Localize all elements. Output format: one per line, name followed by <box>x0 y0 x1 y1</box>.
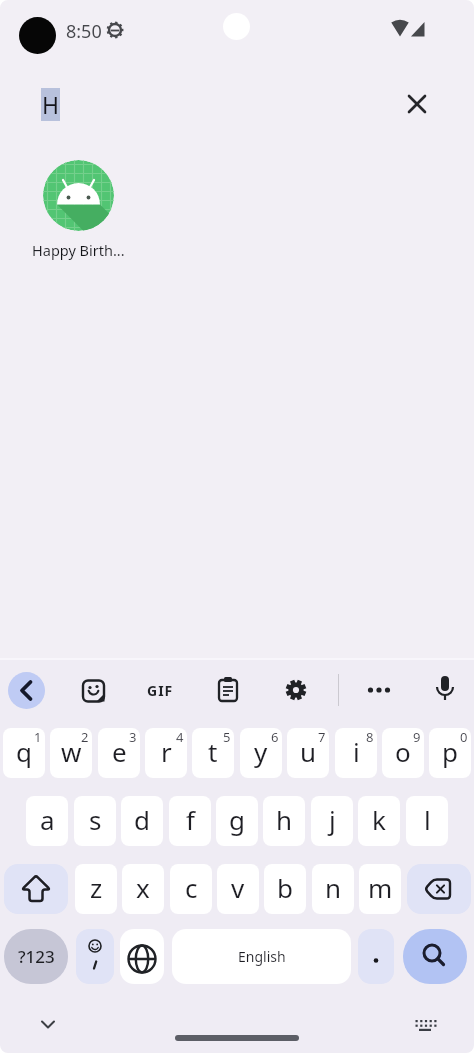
staticText: 8 <box>366 728 374 746</box>
staticText: r <box>161 734 172 769</box>
button[interactable]: c <box>170 864 212 914</box>
button[interactable]: m <box>359 864 401 914</box>
button[interactable] <box>8 672 45 709</box>
staticText: f <box>186 802 195 837</box>
button[interactable]: v <box>217 864 259 914</box>
staticText: n <box>325 870 342 905</box>
button[interactable]: o <box>382 728 424 778</box>
staticText: 8:50 <box>66 19 102 41</box>
button[interactable]: l <box>406 796 448 846</box>
staticText: p <box>442 734 458 769</box>
button[interactable] <box>76 929 114 984</box>
button[interactable] <box>204 666 252 714</box>
staticText: GIF <box>147 681 174 700</box>
button[interactable]: f <box>169 796 211 846</box>
staticText: 6 <box>271 728 279 746</box>
staticText: b <box>277 870 293 905</box>
button[interactable] <box>28 1004 68 1044</box>
button[interactable]: z <box>75 864 117 914</box>
staticText: w <box>61 734 82 769</box>
button[interactable]: GIF <box>136 666 184 714</box>
button[interactable] <box>355 666 403 714</box>
staticText: 2 <box>81 728 89 746</box>
button[interactable] <box>358 929 394 984</box>
staticText: c <box>185 870 198 905</box>
staticText: m <box>368 870 393 905</box>
staticText: ?123 <box>18 945 55 968</box>
button[interactable] <box>19 17 56 54</box>
button[interactable] <box>403 929 467 984</box>
button[interactable]: k <box>358 796 400 846</box>
button[interactable]: t <box>192 728 234 778</box>
staticText: u <box>300 734 317 769</box>
staticText: 0 <box>460 728 468 746</box>
button[interactable]: u <box>287 728 329 778</box>
button[interactable] <box>401 88 433 120</box>
staticText: 5 <box>223 728 231 746</box>
staticText: z <box>90 870 103 905</box>
staticText: e <box>112 734 127 769</box>
button[interactable] <box>272 666 320 714</box>
button[interactable]: s <box>74 796 116 846</box>
button[interactable]: i <box>335 728 377 778</box>
staticText: k <box>372 802 386 837</box>
staticText: o <box>395 734 411 769</box>
button[interactable]: n <box>312 864 354 914</box>
staticText: 1 <box>34 728 42 746</box>
staticText: 7 <box>318 728 326 746</box>
button[interactable] <box>405 1005 445 1045</box>
button[interactable]: j <box>311 796 353 846</box>
button[interactable] <box>69 666 117 714</box>
button[interactable]: r <box>145 728 187 778</box>
staticText: v <box>231 870 245 905</box>
button[interactable] <box>421 666 469 714</box>
staticText: H <box>42 89 60 120</box>
staticText: s <box>89 802 102 837</box>
staticText: Happy Birth... <box>32 240 125 260</box>
staticText: j <box>329 802 336 837</box>
staticText: h <box>276 802 293 837</box>
staticText: 3 <box>129 728 137 746</box>
button[interactable] <box>407 864 471 914</box>
staticText: d <box>134 802 150 837</box>
button[interactable]: d <box>121 796 163 846</box>
staticText: y <box>254 734 268 769</box>
button[interactable] <box>120 929 164 984</box>
button[interactable]: g <box>216 796 258 846</box>
button[interactable]: q <box>3 728 45 778</box>
staticText: q <box>16 734 32 769</box>
button[interactable]: p <box>429 728 471 778</box>
staticText: a <box>40 802 55 837</box>
staticText: l <box>424 802 431 837</box>
button[interactable]: y <box>240 728 282 778</box>
button[interactable]: ?123 <box>4 929 68 984</box>
staticText: i <box>353 734 360 769</box>
button[interactable]: Happy Birth... <box>20 156 137 268</box>
button[interactable]: w <box>50 728 92 778</box>
staticText: x <box>136 870 150 905</box>
button[interactable]: x <box>122 864 164 914</box>
button[interactable]: b <box>264 864 306 914</box>
button[interactable]: a <box>26 796 68 846</box>
staticText: 9 <box>413 728 421 746</box>
button[interactable]: e <box>98 728 140 778</box>
staticText: 4 <box>176 728 184 746</box>
staticText: t <box>208 734 218 769</box>
button[interactable]: h <box>263 796 305 846</box>
button[interactable]: English <box>172 929 351 984</box>
staticText: English <box>238 947 286 966</box>
button[interactable] <box>4 864 68 914</box>
staticText: g <box>229 802 245 837</box>
